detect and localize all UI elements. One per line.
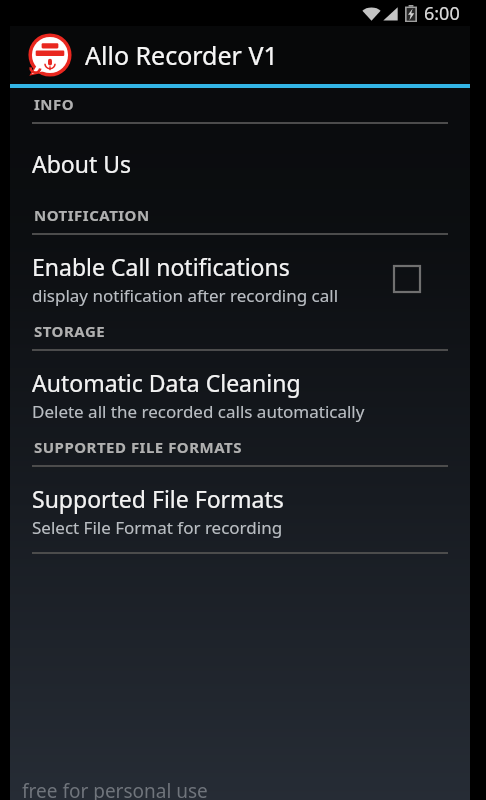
staticText: Supported File Formats — [32, 483, 284, 514]
staticText: Automatic Data Cleaning — [32, 367, 301, 398]
button[interactable]: Supported File Formats — [32, 467, 448, 552]
staticText: SUPPORTED FILE FORMATS — [34, 437, 242, 457]
staticText: Delete all the recorded calls automatica… — [32, 400, 365, 423]
staticText: free for personal use — [22, 778, 208, 800]
staticText: About Us — [32, 148, 132, 179]
staticText: INFO — [34, 94, 75, 114]
staticText: Enable Call notifications — [32, 251, 290, 282]
staticText: Select File Format for recording — [32, 516, 283, 539]
button[interactable]: Enable call notifications checkbox — [394, 266, 420, 292]
button[interactable]: Automatic Data Cleaning — [32, 351, 448, 437]
staticText: STORAGE — [34, 321, 106, 341]
staticText: display notification after recording cal… — [32, 284, 339, 307]
staticText: Allo Recorder V1 — [85, 38, 278, 72]
staticText: NOTIFICATION — [34, 205, 150, 225]
staticText: 6:00 — [424, 1, 460, 26]
other: Allo Recorder logo — [28, 33, 72, 77]
button[interactable]: Enable Call notifications — [32, 235, 448, 321]
button[interactable]: About Us — [32, 124, 448, 205]
